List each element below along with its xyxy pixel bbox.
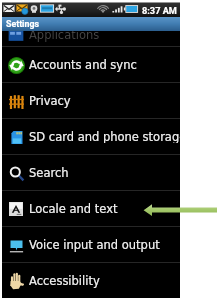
staticText: Applications bbox=[29, 28, 100, 41]
staticText: Accounts and sync bbox=[29, 58, 137, 71]
staticText: 8:37 AM bbox=[142, 5, 177, 16]
button[interactable]: Voice input and output bbox=[2, 227, 180, 262]
button[interactable]: Privacy bbox=[2, 83, 180, 118]
button[interactable]: SD card and phone storage bbox=[2, 119, 180, 154]
button[interactable]: Applications bbox=[2, 11, 180, 46]
button[interactable]: Accounts and sync bbox=[2, 47, 180, 82]
staticText: Search bbox=[29, 166, 69, 179]
other: Highlight arrow bbox=[0, 0, 217, 300]
staticText: Settings bbox=[6, 19, 39, 29]
staticText: Accessibility bbox=[29, 274, 100, 287]
button[interactable]: Accessibility bbox=[2, 263, 180, 298]
staticText: Voice input and output bbox=[29, 238, 160, 251]
button[interactable]: Locale and text bbox=[2, 191, 180, 226]
staticText: SD card and phone storage bbox=[29, 130, 180, 143]
staticText: Privacy bbox=[29, 94, 71, 107]
staticText: Locale and text bbox=[29, 202, 118, 215]
button[interactable]: Search bbox=[2, 155, 180, 190]
